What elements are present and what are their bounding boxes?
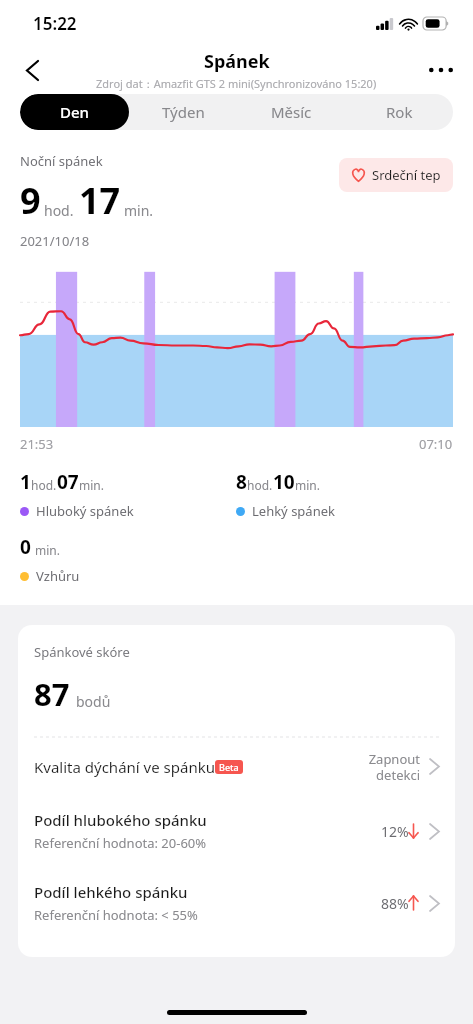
button[interactable]: Srdeční tep bbox=[339, 158, 453, 192]
staticText: Beta bbox=[219, 761, 239, 773]
staticText: 21:53 bbox=[20, 435, 54, 453]
staticText: Měsíc bbox=[271, 102, 312, 122]
staticText: 10 bbox=[273, 469, 295, 495]
staticText: 12% bbox=[381, 822, 409, 841]
staticText: Vzhůru bbox=[36, 567, 80, 585]
staticText: 2021/10/18 bbox=[20, 232, 90, 250]
staticText: 88% bbox=[381, 894, 409, 913]
staticText: 0 bbox=[20, 534, 31, 560]
staticText: bodů bbox=[76, 692, 111, 711]
staticText: Hluboký spánek bbox=[36, 502, 134, 520]
button[interactable]: Rok bbox=[345, 94, 453, 130]
staticText: 07 bbox=[57, 469, 79, 495]
staticText: min. bbox=[79, 477, 104, 493]
staticText: hod. bbox=[247, 477, 273, 493]
staticText: Spánkové skóre bbox=[34, 643, 130, 661]
staticText: Referenční hodnota: < 55% bbox=[34, 906, 198, 924]
button[interactable]: Kvalita dýchání ve spánku bbox=[18, 738, 455, 795]
staticText: Noční spánek bbox=[20, 152, 103, 170]
staticText: 8 bbox=[236, 469, 247, 495]
staticText: 87 bbox=[34, 673, 70, 715]
staticText: Podíl lehkého spánku bbox=[34, 882, 188, 902]
staticText: 9 bbox=[20, 176, 41, 225]
staticText: Podíl hlubokého spánku bbox=[34, 810, 207, 830]
staticText: Kvalita dýchání ve spánku bbox=[34, 757, 215, 777]
staticText: Zdroj dat：Amazfit GTS 2 mini(Synchronizo… bbox=[96, 76, 377, 91]
button[interactable]: Back bbox=[10, 48, 54, 92]
button[interactable]: Den bbox=[20, 94, 129, 130]
staticText: 17 bbox=[79, 176, 121, 225]
staticText: 07:10 bbox=[419, 435, 453, 453]
staticText: hod. bbox=[44, 201, 74, 220]
staticText: 15:22 bbox=[33, 12, 77, 35]
staticText: Den bbox=[60, 102, 89, 122]
button[interactable]: Podíl hlubokého spánku bbox=[18, 795, 455, 867]
staticText: Spánek bbox=[204, 49, 270, 74]
button[interactable]: Týden bbox=[129, 94, 237, 130]
staticText: min. bbox=[124, 201, 154, 220]
staticText: hod. bbox=[31, 477, 57, 493]
staticText: Srdeční tep bbox=[372, 166, 441, 184]
button[interactable]: More options bbox=[419, 48, 463, 92]
staticText: Lehký spánek bbox=[252, 502, 335, 520]
staticText: 1 bbox=[20, 469, 31, 495]
staticText: Zapnout detekci bbox=[368, 750, 420, 783]
button[interactable]: Podíl lehkého spánku bbox=[18, 867, 455, 939]
staticText: Týden bbox=[162, 102, 205, 122]
staticText: Referenční hodnota: 20-60% bbox=[34, 834, 207, 852]
staticText: min. bbox=[35, 542, 60, 558]
staticText: Rok bbox=[386, 102, 413, 122]
button[interactable]: Měsíc bbox=[237, 94, 345, 130]
staticText: min. bbox=[295, 477, 320, 493]
